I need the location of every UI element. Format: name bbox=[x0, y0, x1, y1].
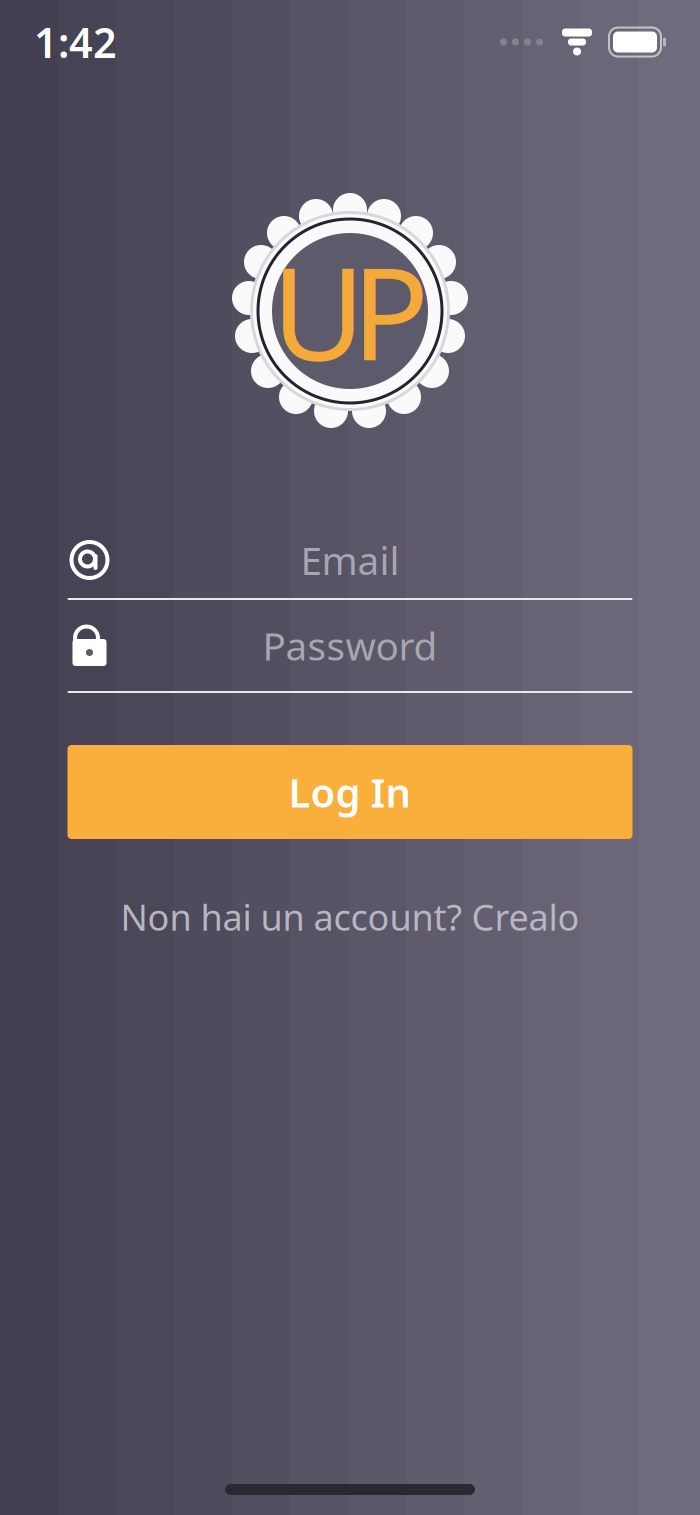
staticText: P bbox=[351, 226, 428, 396]
button[interactable]: Log In bbox=[67, 745, 632, 839]
staticText: U bbox=[271, 226, 365, 396]
staticText: Password bbox=[262, 620, 437, 671]
button[interactable]: Non hai un account? Crealo bbox=[100, 883, 599, 951]
staticText: Email bbox=[300, 534, 399, 586]
staticText: Log In bbox=[288, 765, 411, 818]
staticText: 1:42 bbox=[34, 15, 117, 69]
staticText: Non hai un account? Crealo bbox=[120, 893, 579, 941]
